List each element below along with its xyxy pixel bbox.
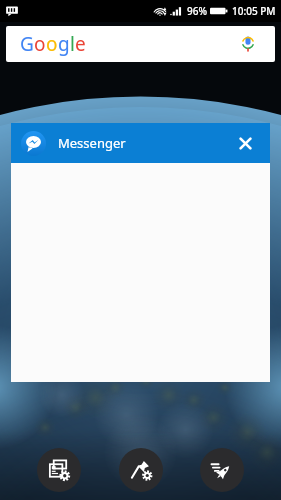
button[interactable]: Close xyxy=(230,128,260,158)
staticText: G xyxy=(20,31,34,57)
button[interactable]: Pin shortcut settings xyxy=(119,448,163,492)
button[interactable]: G xyxy=(6,26,275,62)
staticText: g xyxy=(58,31,70,57)
staticText: l xyxy=(70,31,75,57)
staticText: o xyxy=(34,31,46,57)
staticText: 96% xyxy=(187,4,207,18)
staticText: o xyxy=(46,31,58,57)
button[interactable]: Voice search xyxy=(235,31,261,57)
staticText: 10:05 PM xyxy=(232,4,276,18)
button[interactable]: Messenger xyxy=(11,123,270,163)
button[interactable]: Boost xyxy=(200,448,244,492)
staticText: Messenger xyxy=(58,134,126,152)
staticText: e xyxy=(75,31,86,57)
button[interactable]: Widgets and settings xyxy=(37,448,81,492)
